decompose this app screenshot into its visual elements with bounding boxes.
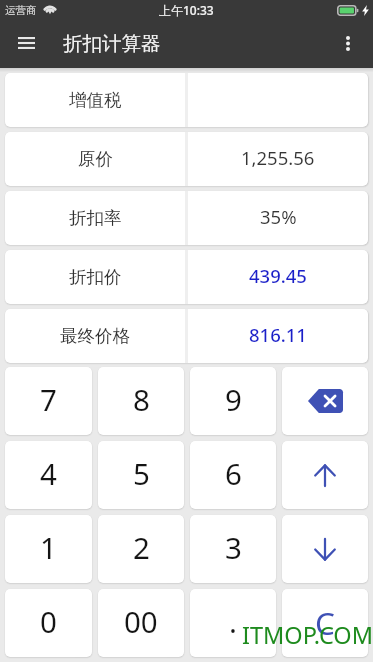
staticText: 439.45	[249, 263, 307, 288]
button[interactable]: 折扣率	[5, 191, 368, 245]
staticText: ITMOP.COM	[242, 619, 373, 651]
staticText: 1	[40, 527, 57, 567]
button[interactable]: 3	[190, 515, 276, 583]
button[interactable]: 6	[190, 441, 276, 509]
button[interactable]: .	[190, 589, 276, 657]
staticText: 00	[124, 601, 158, 641]
staticText: 0	[40, 601, 57, 641]
button[interactable]: 1	[5, 515, 92, 583]
staticText: 35%	[260, 204, 297, 229]
staticText: 1,255.56	[241, 145, 315, 170]
button[interactable]: Move up	[282, 441, 368, 509]
button[interactable]: Clear	[282, 589, 368, 657]
staticText: 5	[133, 453, 150, 493]
staticText: 9	[225, 379, 242, 419]
button[interactable]: Menu	[8, 25, 44, 61]
staticText: 3	[225, 527, 242, 567]
button[interactable]: 9	[190, 367, 276, 435]
button[interactable]: More options	[330, 25, 366, 61]
staticText: 增值税	[69, 89, 122, 111]
staticText: C	[315, 601, 335, 644]
button[interactable]: 0	[5, 589, 92, 657]
staticText: 折扣率	[69, 207, 122, 229]
button[interactable]: 折扣价	[5, 250, 368, 304]
button[interactable]: 2	[98, 515, 184, 583]
button[interactable]: Move down	[282, 515, 368, 583]
button[interactable]: 增值税	[5, 73, 368, 127]
staticText: 2	[133, 527, 150, 567]
staticText: .	[229, 601, 237, 641]
button[interactable]: 最终价格	[5, 309, 368, 363]
staticText: 816.11	[249, 322, 307, 347]
staticText: 折扣价	[69, 266, 122, 288]
staticText: 6	[225, 453, 242, 493]
button[interactable]: 00	[98, 589, 184, 657]
staticText: 8	[133, 379, 150, 419]
staticText: 最终价格	[60, 325, 130, 347]
staticText: 上午10:33	[159, 2, 214, 18]
button[interactable]: Backspace	[282, 367, 368, 435]
staticText: 折扣计算器	[63, 31, 161, 56]
button[interactable]: 7	[5, 367, 92, 435]
button[interactable]: 8	[98, 367, 184, 435]
button[interactable]: 原价	[5, 132, 368, 186]
button[interactable]: 4	[5, 441, 92, 509]
staticText: 原价	[78, 148, 113, 170]
staticText: 运营商	[5, 4, 37, 17]
button[interactable]: 5	[98, 441, 184, 509]
staticText: 4	[40, 453, 57, 493]
staticText: 7	[40, 379, 57, 419]
